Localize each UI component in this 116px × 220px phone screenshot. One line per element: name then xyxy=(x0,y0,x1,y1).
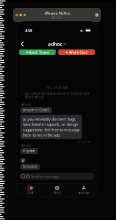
staticText: iPhone 16 Pro xyxy=(44,11,69,16)
staticText: as you inevitably discover bugs, have fe… xyxy=(23,116,80,137)
staticText: adhoc xyxy=(48,40,63,47)
staticText: adhoc6 xyxy=(21,144,31,147)
staticText: Work Out xyxy=(69,49,88,55)
staticText: Tools xyxy=(53,191,60,194)
staticText: you loaded this chat as a child of 1d45f… xyxy=(24,92,89,99)
staticText: Settings xyxy=(78,191,89,194)
staticText: Thu 10:30 AM xyxy=(47,86,67,89)
button[interactable]: Add Trace xyxy=(19,49,56,55)
staticText: Add Trace xyxy=(29,49,49,55)
button[interactable]: Back xyxy=(20,40,27,47)
staticText: hi gimme xyxy=(23,149,36,153)
button[interactable]: Settings xyxy=(70,184,97,197)
staticText: 4:58 xyxy=(25,28,32,33)
staticText: Chat xyxy=(27,191,33,194)
button[interactable]: Add photo xyxy=(26,175,30,178)
staticText: 3:26 PM xyxy=(78,140,90,143)
staticText: welcome to Comet! xyxy=(23,108,50,112)
button[interactable]: adhoc xyxy=(48,40,66,47)
button[interactable]: Attach file xyxy=(22,175,25,178)
staticText: Send a message... xyxy=(31,174,62,179)
button[interactable]: Chat xyxy=(17,184,44,197)
staticText: this is cool xyxy=(23,165,38,168)
staticText: adhoc6 xyxy=(21,103,31,106)
button[interactable]: Work Out xyxy=(58,49,95,55)
button[interactable]: Tools xyxy=(44,184,70,197)
staticText: iOS 18.1 xyxy=(51,16,63,19)
